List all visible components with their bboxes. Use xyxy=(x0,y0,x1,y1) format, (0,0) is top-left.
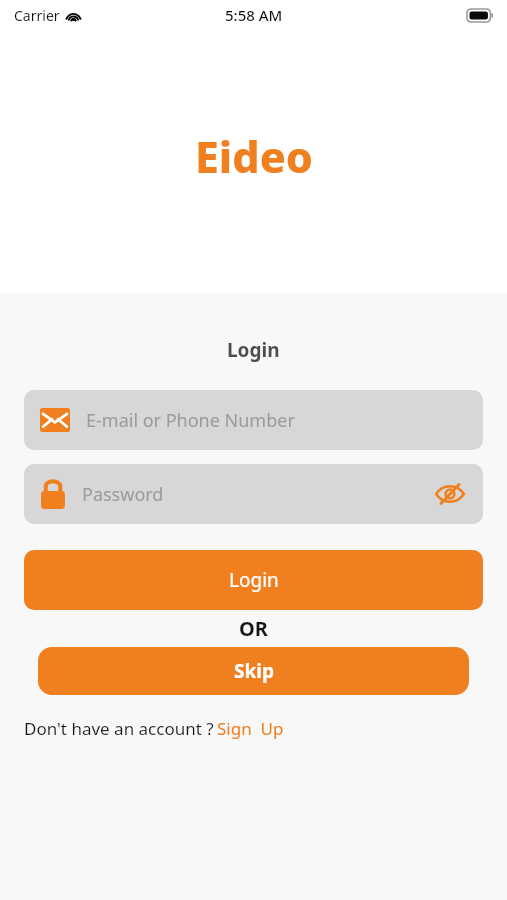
staticText: E-mail or Phone Number xyxy=(86,408,467,433)
button[interactable]: Sign Up xyxy=(214,717,284,740)
staticText: Carrier xyxy=(14,6,60,25)
staticText: OR xyxy=(239,615,268,642)
staticText: Skip xyxy=(234,658,274,684)
staticText: Don't have an account ? xyxy=(24,717,214,740)
staticText: 5:58 AM xyxy=(225,5,283,25)
button[interactable]: Show password xyxy=(433,477,467,511)
staticText: Sign Up xyxy=(217,717,284,740)
staticText: Login xyxy=(227,337,280,363)
button[interactable]: Skip xyxy=(38,647,469,695)
staticText: Login xyxy=(229,567,279,593)
button[interactable]: Password xyxy=(24,464,483,524)
button[interactable]: Login xyxy=(24,550,483,610)
button[interactable]: E-mail or Phone Number xyxy=(24,390,483,450)
staticText: Eideo xyxy=(195,127,313,186)
staticText: Password xyxy=(82,482,433,507)
